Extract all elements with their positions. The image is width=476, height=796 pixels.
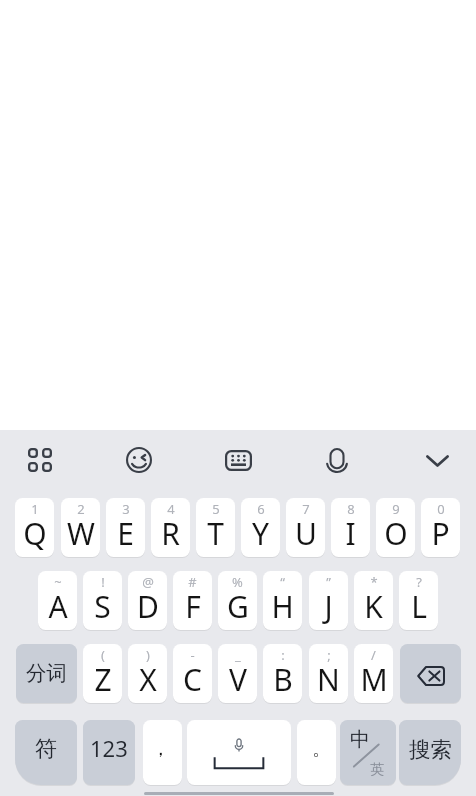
button[interactable]: 5 [196, 498, 235, 557]
staticText: F [185, 586, 201, 627]
button[interactable]: 6 [241, 498, 280, 557]
button[interactable]: ( [83, 644, 122, 703]
staticText: 3 [122, 500, 130, 518]
staticText: : [281, 646, 285, 664]
staticText: 2 [77, 500, 85, 518]
button[interactable]: 7 [286, 498, 325, 557]
button[interactable]: : [263, 644, 302, 703]
button[interactable]: # [173, 571, 212, 630]
staticText: 英 [370, 761, 384, 779]
button[interactable]: ? [399, 571, 438, 630]
button[interactable]: 1 [15, 498, 54, 557]
button[interactable]: Emoji [121, 442, 157, 478]
staticText: @ [142, 573, 154, 591]
button[interactable]: Voice input [319, 442, 355, 478]
staticText: G [227, 586, 249, 627]
staticText: 4 [167, 500, 175, 518]
staticText: N [317, 659, 340, 700]
staticText: B [273, 659, 293, 700]
staticText: 1 [31, 500, 39, 518]
button[interactable]: 0 [421, 498, 460, 557]
staticText: T [207, 513, 224, 554]
staticText: ~ [54, 573, 62, 591]
staticText: E [117, 513, 134, 554]
staticText: R [161, 513, 180, 554]
staticText: S [94, 586, 111, 627]
staticText: 。 [312, 737, 331, 761]
button[interactable]: Hide keyboard [419, 443, 455, 479]
button[interactable]: * [354, 571, 393, 630]
button[interactable] [187, 720, 291, 785]
staticText: ( [101, 646, 105, 664]
button[interactable]: 4 [151, 498, 190, 557]
button[interactable] [400, 644, 461, 703]
button[interactable]: ) [128, 644, 167, 703]
button[interactable]: ! [83, 571, 122, 630]
staticText: O [384, 513, 408, 554]
staticText: Y [252, 513, 269, 554]
staticText: 中 [350, 727, 370, 752]
staticText: * [370, 573, 378, 591]
staticText: C [183, 659, 202, 700]
button[interactable]: ; [309, 644, 348, 703]
staticText: H [271, 586, 294, 627]
staticText: 9 [392, 500, 400, 518]
button[interactable]: Keyboard layouts [22, 442, 58, 478]
staticText: - [190, 646, 195, 664]
staticText: 123 [90, 733, 128, 763]
staticText: % [232, 573, 243, 591]
button[interactable]: ~ [38, 571, 77, 630]
staticText: ) [146, 646, 150, 664]
staticText: X [139, 659, 157, 700]
button[interactable]: @ [128, 571, 167, 630]
staticText: U [295, 513, 317, 554]
staticText: ? [416, 573, 422, 591]
staticText: 5 [212, 500, 220, 518]
staticText: Q [23, 513, 47, 554]
staticText: 6 [257, 500, 265, 518]
button[interactable]: 搜索 [399, 720, 461, 785]
staticText: 符 [35, 735, 57, 763]
staticText: ” [326, 573, 331, 591]
staticText: 分词 [26, 660, 67, 686]
staticText: ; [327, 646, 331, 664]
button[interactable]: % [218, 571, 257, 630]
button[interactable]: 2 [61, 498, 100, 557]
button[interactable]: 9 [376, 498, 415, 557]
staticText: 0 [437, 500, 445, 518]
button[interactable]: “ [263, 571, 302, 630]
staticText: V [229, 659, 247, 700]
button[interactable]: 8 [331, 498, 370, 557]
button[interactable]: 3 [106, 498, 145, 557]
button[interactable]: 符 [15, 720, 77, 785]
button[interactable]: Keyboard [220, 442, 256, 478]
staticText: 8 [347, 500, 355, 518]
button[interactable]: _ [218, 644, 257, 703]
button[interactable]: - [173, 644, 212, 703]
staticText: / [371, 646, 376, 664]
staticText: ! [101, 573, 105, 591]
staticText: _ [235, 646, 241, 664]
button[interactable]: 分词 [16, 644, 77, 703]
staticText: ， [151, 737, 170, 761]
button[interactable]: 中 [340, 720, 396, 785]
staticText: K [364, 586, 383, 627]
staticText: 搜索 [409, 736, 452, 763]
staticText: “ [280, 573, 285, 591]
button[interactable]: / [354, 644, 393, 703]
button[interactable]: 123 [83, 720, 135, 785]
staticText: # [188, 573, 197, 591]
staticText: A [48, 586, 68, 627]
staticText: 7 [302, 500, 310, 518]
staticText: L [411, 586, 427, 627]
staticText: D [137, 586, 159, 627]
button[interactable]: ” [309, 571, 348, 630]
staticText: P [431, 513, 450, 554]
staticText: Z [94, 659, 112, 700]
staticText: W [67, 513, 95, 554]
button[interactable]: ， [143, 720, 182, 785]
staticText: M [360, 659, 388, 700]
button[interactable]: 。 [297, 720, 336, 785]
staticText: J [324, 586, 333, 627]
staticText: I [345, 513, 356, 554]
